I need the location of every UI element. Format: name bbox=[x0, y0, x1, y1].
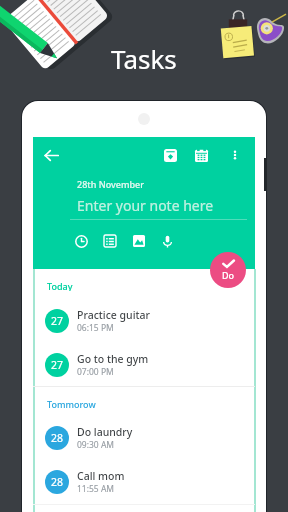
button[interactable]: Voice note bbox=[160, 234, 174, 248]
button[interactable]: Save bbox=[158, 143, 182, 167]
button[interactable]: More options bbox=[224, 144, 246, 166]
button[interactable]: 28 bbox=[33, 419, 255, 457]
button[interactable]: Calendar bbox=[189, 143, 213, 167]
button[interactable]: 27 bbox=[33, 346, 255, 384]
staticText: 07:00 PM bbox=[77, 366, 114, 378]
staticText: Do laundry bbox=[77, 425, 133, 439]
staticText: 28 bbox=[51, 475, 64, 489]
staticText: 28th November bbox=[77, 178, 145, 190]
button[interactable]: 28 bbox=[33, 463, 255, 501]
staticText: 27 bbox=[51, 314, 64, 328]
staticText: Today bbox=[47, 280, 73, 291]
button[interactable]: Image bbox=[132, 234, 146, 248]
staticText: Enter your note here bbox=[77, 196, 214, 215]
staticText: 27 bbox=[51, 358, 64, 372]
staticText: 09:30 AM bbox=[77, 439, 115, 451]
staticText: Tommorow bbox=[47, 398, 96, 409]
button[interactable]: Done bbox=[210, 252, 246, 288]
staticText: 06:15 PM bbox=[77, 322, 114, 334]
staticText: Call mom bbox=[77, 469, 125, 483]
staticText: Do bbox=[222, 269, 235, 281]
staticText: 28 bbox=[51, 431, 64, 445]
button[interactable]: Checklist bbox=[103, 234, 117, 248]
staticText: 11:55 AM bbox=[77, 483, 115, 495]
staticText: Tasks bbox=[111, 41, 177, 76]
button[interactable]: Back bbox=[39, 143, 64, 168]
staticText: Practice guitar bbox=[77, 308, 150, 322]
button[interactable]: 27 bbox=[33, 302, 255, 340]
button[interactable]: Reminder bbox=[74, 234, 88, 248]
staticText: Go to the gym bbox=[77, 352, 149, 366]
